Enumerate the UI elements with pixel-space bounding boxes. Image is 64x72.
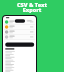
staticText: CSV & Text Export [0, 1, 64, 14]
button[interactable]: App preview [2, 15, 37, 72]
